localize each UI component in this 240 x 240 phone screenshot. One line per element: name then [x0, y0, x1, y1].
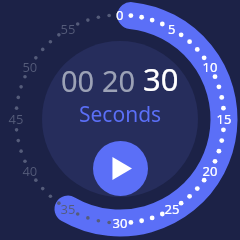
- staticText: 30: [143, 58, 179, 100]
- staticText: 00: [61, 61, 95, 100]
- staticText: 20: [102, 61, 136, 100]
- button[interactable]: Start timer: [93, 141, 148, 196]
- staticText: Seconds: [79, 100, 162, 129]
